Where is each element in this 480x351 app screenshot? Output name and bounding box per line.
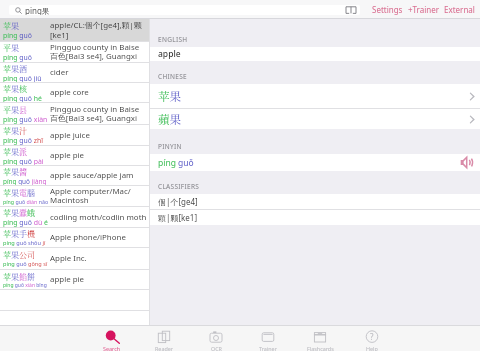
staticText: 苹果酒 [3,63,27,74]
staticText: Pingguo county in Baise 百色[Bai3 se4], Gu… [50,104,149,124]
button[interactable]: Reader [138,326,190,351]
staticText: apple pie [50,274,85,285]
staticText: Pingguo county in Baise 百色[Bai3 se4], Gu… [50,42,149,62]
button[interactable]: OCR [190,326,242,351]
button[interactable]: External [444,4,475,15]
staticText: Search [103,345,121,351]
button[interactable]: Help [346,326,398,351]
staticText: píng guǒ [158,157,194,169]
staticText: Apple phone/iPhone [50,232,126,243]
staticText: apple sauce/apple jam [50,170,134,181]
staticText: píng guǒ dù é [3,218,48,227]
staticText: 平果 [3,42,19,53]
staticText: píng guǒ diàn nǎo [3,198,49,205]
staticText: píng guǒ xiàn bǐng [3,282,47,289]
staticText: apple [158,48,181,60]
staticText: CLASSIFIERS [158,182,200,191]
staticText: 平果县 [3,104,27,115]
staticText: 苹果核 [3,83,27,94]
staticText: píng guǒ pài [3,157,44,165]
staticText: 苹果 [158,88,182,105]
staticText: cider [50,67,69,78]
staticText: Apple computer/Mac/Macintosh [50,186,149,206]
staticText: apple pie [50,150,85,161]
staticText: 蘋果 [158,111,182,128]
button[interactable]: 苹果汁 [0,125,149,145]
button[interactable]: 顆|颗[ke1] [158,210,474,225]
button[interactable]: Dictionary [346,6,356,14]
staticText: 苹果公司 [3,249,35,260]
staticText: píng guǒ hé [3,94,42,102]
button[interactable]: 苹果電腦 [0,186,149,206]
staticText: 苹果汁 [3,125,27,136]
button[interactable]: 蘋果 [158,109,474,129]
staticText: OCR [211,345,222,351]
button[interactable]: Flashcards [294,326,346,351]
staticText: Apple Inc. [50,253,87,264]
button[interactable]: 個|个[ge4] [158,194,474,209]
button[interactable]: 苹果手機 [0,228,149,247]
staticText: 苹果派 [3,146,27,157]
button[interactable]: ping果 [9,5,360,15]
button[interactable]: 苹果派 [0,146,149,165]
staticText: píng guǒ gōng sī [3,260,48,268]
staticText: CHINESE [158,72,187,81]
button[interactable]: apple [158,47,474,61]
staticText: píng guǒ zhī [3,136,44,145]
button[interactable]: +Trainer [408,4,440,15]
staticText: 苹果餡餅 [3,271,35,282]
staticText: apple juice [50,130,90,141]
staticText: ? [370,331,374,342]
staticText: codling moth/codlin moth [50,212,147,223]
staticText: píng guǒ shǒu jī [3,239,46,247]
staticText: Help [366,345,378,351]
button[interactable]: 苹果 [158,84,474,108]
staticText: Trainer [259,345,277,351]
staticText: ping果 [25,5,50,15]
staticText: píng guǒ jiǔ [3,74,42,82]
staticText: píng guǒ [3,53,32,62]
button[interactable]: 苹果餡餅 [0,270,149,289]
staticText: Reader [155,345,173,351]
staticText: píng guǒ [3,31,32,40]
other: Play audio [461,157,472,168]
button[interactable]: 苹果核 [0,83,149,102]
button[interactable]: 苹果酒 [0,63,149,82]
staticText: PINYIN [158,142,182,151]
staticText: 苹果電腦 [3,187,35,198]
button[interactable]: 苹果醬 [0,166,149,185]
staticText: apple/CL:個个[ge4],顆|颗[ke1] [50,20,149,41]
button[interactable]: 平果 [0,42,149,62]
button[interactable]: 苹果公司 [0,248,149,269]
staticText: píng guǒ xiàn [3,115,48,124]
staticText: píng guǒ jiàng [3,177,47,185]
button[interactable]: Search [86,326,138,351]
staticText: 苹果 [3,20,19,31]
staticText: 苹果蠹蛾 [3,207,35,218]
button[interactable]: 平果县 [0,103,149,124]
button[interactable]: Settings [372,4,403,15]
staticText: Flashcards [307,345,334,351]
staticText: 個|个[ge4] [158,196,198,207]
button[interactable]: píng guǒ [158,154,474,171]
button[interactable]: 苹果蠹蛾 [0,207,149,227]
staticText: apple core [50,87,89,98]
staticText: ENGLISH [158,35,188,44]
staticText: 顆|颗[ke1] [158,212,198,223]
staticText: 苹果醬 [3,166,27,177]
button[interactable]: Trainer [242,326,294,351]
staticText: 苹果手機 [3,228,35,239]
button[interactable]: 苹果 [0,19,149,41]
